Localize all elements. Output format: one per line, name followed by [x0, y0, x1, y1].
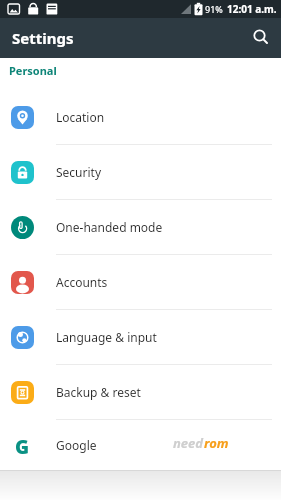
- button[interactable]: G: [0, 420, 281, 470]
- staticText: Language & input: [56, 329, 157, 345]
- staticText: 91%: [205, 3, 223, 15]
- staticText: rom: [204, 434, 229, 452]
- staticText: 12:01 a.m.: [227, 2, 277, 16]
- button[interactable]: Accounts: [0, 255, 281, 309]
- button[interactable]: One-handed mode: [0, 200, 281, 254]
- button[interactable]: [247, 24, 275, 52]
- button[interactable]: Backup & reset: [0, 365, 281, 419]
- staticText: Personal: [9, 63, 57, 78]
- button[interactable]: Security: [0, 145, 281, 199]
- staticText: need: [173, 434, 204, 452]
- staticText: Settings: [12, 28, 74, 48]
- staticText: Location: [56, 109, 105, 125]
- staticText: One-handed mode: [56, 219, 163, 235]
- staticText: Google: [56, 437, 97, 453]
- staticText: Backup & reset: [56, 384, 141, 400]
- button[interactable]: Location: [0, 90, 281, 144]
- staticText: G: [15, 434, 30, 457]
- staticText: Security: [56, 164, 102, 180]
- staticText: Accounts: [56, 274, 108, 290]
- button[interactable]: Language & input: [0, 310, 281, 364]
